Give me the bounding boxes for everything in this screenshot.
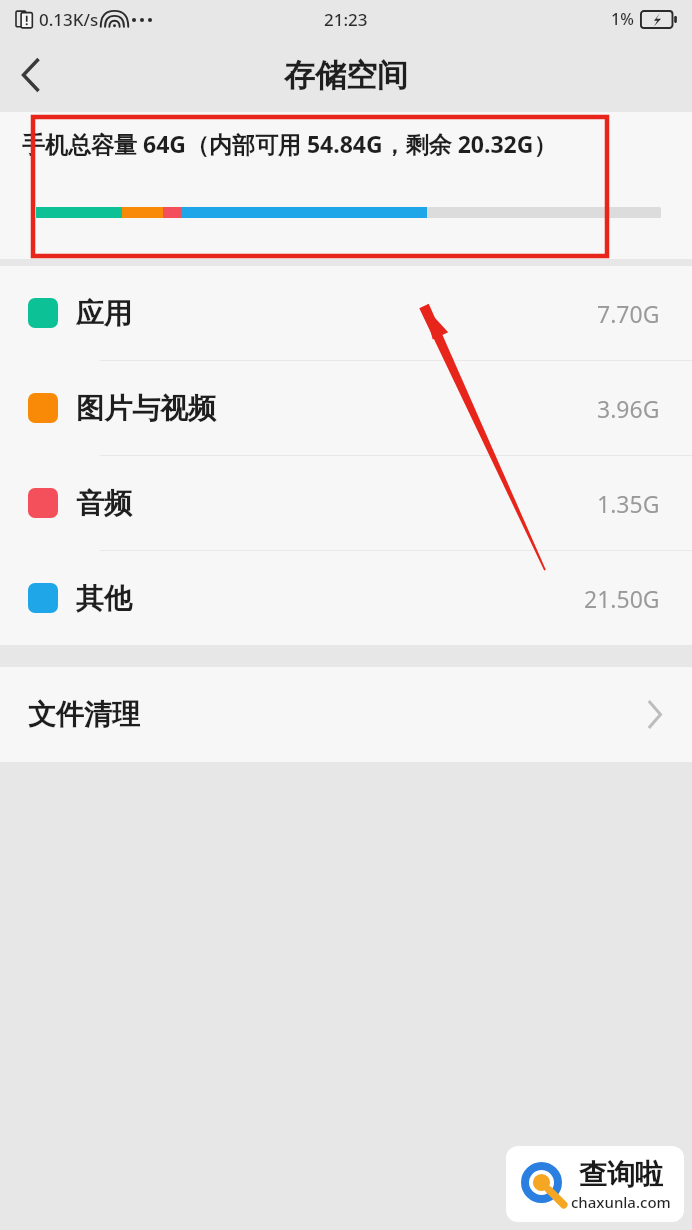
button[interactable]: Back — [0, 44, 62, 106]
button[interactable]: 应用 — [0, 266, 692, 360]
staticText: 0.13K/s — [39, 8, 99, 31]
staticText: 3.96G — [597, 393, 660, 424]
staticText: 7.70G — [597, 298, 660, 329]
staticText: 其他 — [76, 581, 132, 616]
staticText: 查询啦 — [579, 1157, 663, 1192]
button[interactable]: 图片与视频 — [0, 361, 692, 455]
staticText: 1% — [611, 8, 634, 30]
button[interactable]: 音频 — [0, 456, 692, 550]
staticText: 图片与视频 — [76, 391, 216, 426]
button[interactable]: 其他 — [0, 551, 692, 645]
staticText: 手机总容量 64G（内部可用 54.84G，剩余 20.32G） — [22, 128, 557, 159]
staticText: chaxunla.com — [571, 1192, 671, 1212]
staticText: 文件清理 — [28, 697, 140, 732]
staticText: 存储空间 — [284, 56, 408, 95]
staticText: 1.35G — [597, 488, 660, 519]
button[interactable]: 文件清理 — [0, 667, 692, 762]
staticText: 21.50G — [584, 583, 660, 614]
staticText: 音频 — [76, 486, 132, 521]
staticText: 21:23 — [324, 8, 368, 31]
staticText: 应用 — [76, 296, 132, 331]
